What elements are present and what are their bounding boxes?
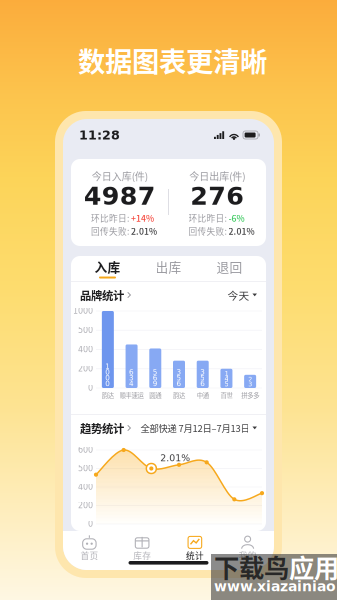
button[interactable]: 品牌统计 — [80, 285, 131, 305]
staticText: 5 — [176, 374, 181, 382]
staticText: 1 — [105, 362, 110, 370]
staticText: 5 — [200, 374, 205, 382]
staticText: 韵达 — [102, 390, 114, 400]
staticText: 5 — [153, 368, 158, 376]
staticText: 今日入库(件) — [92, 169, 148, 183]
button[interactable]: 库存 — [116, 532, 169, 563]
staticText: -6% — [228, 212, 244, 224]
staticText: 统计 — [186, 549, 204, 562]
staticText: 2.01% — [228, 225, 254, 237]
staticText: 品牌统计 — [80, 287, 124, 303]
staticText: 11:28 — [79, 128, 120, 142]
staticText: 400 — [78, 345, 93, 354]
staticText: 6 — [176, 379, 181, 388]
staticText: 3 — [248, 380, 252, 388]
staticText: 今天 — [227, 287, 249, 303]
button[interactable]: 首页 — [63, 532, 116, 563]
staticText: 500 — [78, 326, 93, 335]
staticText: 2.01% — [160, 452, 190, 463]
staticText: 入库 — [94, 257, 120, 276]
staticText: +14% — [131, 212, 154, 224]
staticText: 500 — [78, 464, 93, 473]
staticText: 中通 — [197, 390, 209, 400]
button[interactable]: 今天 — [227, 285, 257, 305]
staticText: 拼多多 — [241, 390, 259, 400]
staticText: 出库 — [155, 257, 181, 276]
staticText: 600 — [78, 445, 93, 455]
staticText: 4 — [129, 379, 134, 388]
staticText: 2 — [248, 376, 252, 383]
staticText: 2.01% — [131, 225, 157, 237]
staticText: 6 — [153, 374, 158, 382]
staticText: 0 — [88, 519, 93, 529]
staticText: 5 — [224, 380, 228, 388]
staticText: 下载鸟 — [214, 548, 289, 585]
staticText: 3 — [176, 368, 181, 376]
staticText: 回传失败: — [91, 225, 129, 237]
staticText: 顺丰速运 — [120, 390, 144, 400]
button[interactable]: 全部快递 7月12日–7月13日 — [140, 418, 257, 438]
staticText: 3 — [200, 368, 205, 376]
staticText: 6 — [200, 379, 205, 388]
staticText: 4987 — [84, 181, 156, 211]
staticText: www.xiazainiao.com — [214, 578, 337, 595]
staticText: 韵达 — [173, 390, 185, 400]
button[interactable]: 入库 — [77, 256, 138, 281]
staticText: 百世 — [220, 390, 232, 400]
staticText: 我的 — [239, 549, 257, 562]
staticText: 数据图表更清晰 — [78, 40, 267, 80]
staticText: 200 — [78, 364, 93, 373]
staticText: 3 — [129, 374, 134, 382]
staticText: 环比昨日: — [188, 212, 226, 224]
staticText: 0 — [105, 374, 110, 382]
button[interactable]: 统计 — [168, 532, 221, 563]
staticText: 趋势统计 — [80, 420, 124, 436]
staticText: 1 — [224, 369, 228, 377]
staticText: 环比昨日: — [91, 212, 129, 224]
staticText: 1000 — [73, 306, 93, 316]
staticText: 0 — [105, 379, 110, 388]
button[interactable]: 我的 — [221, 532, 274, 563]
staticText: 6 — [129, 368, 134, 376]
staticText: 276 — [190, 181, 244, 211]
staticText: 首页 — [80, 549, 98, 562]
staticText: 应用 — [289, 548, 337, 585]
staticText: 全部快递 7月12日–7月13日 — [140, 421, 249, 435]
button[interactable]: 退回 — [199, 256, 260, 281]
staticText: 回传失败: — [188, 225, 226, 237]
staticText: 库存 — [133, 549, 151, 562]
staticText: 4 — [224, 375, 228, 383]
staticText: 今日出库(件) — [189, 169, 245, 183]
button[interactable]: 出库 — [138, 256, 199, 281]
button[interactable]: 趋势统计 — [80, 418, 131, 438]
staticText: 200 — [78, 501, 93, 510]
staticText: 圆通 — [149, 390, 161, 400]
staticText: 0 — [105, 368, 110, 376]
staticText: 400 — [78, 482, 93, 492]
staticText: 退回 — [216, 257, 242, 276]
staticText: 9 — [153, 379, 158, 388]
staticText: 0 — [88, 383, 93, 393]
